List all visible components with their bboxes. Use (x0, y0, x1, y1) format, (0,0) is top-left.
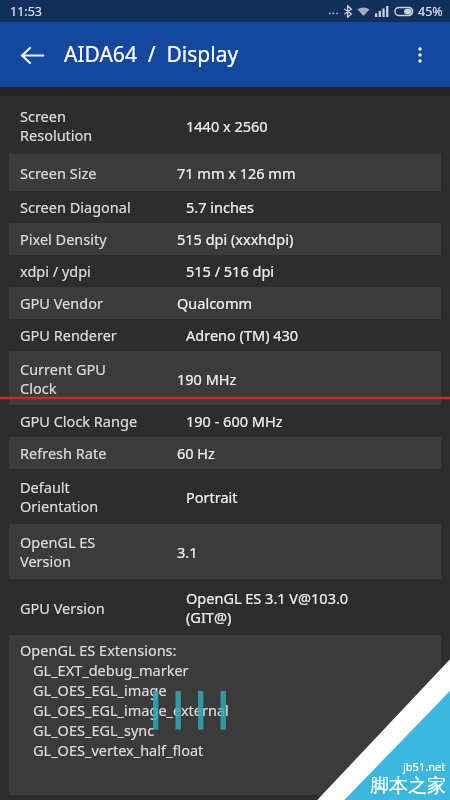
button[interactable]: OpenGL ES Extensions: (9, 635, 441, 795)
button[interactable]: Screen Resolution (0, 96, 450, 154)
button[interactable]: Refresh Rate (0, 437, 450, 469)
staticText: 515 dpi (xxxhdpi) (177, 229, 294, 249)
staticText: Portrait (186, 487, 238, 507)
button[interactable]: GPU Version (0, 579, 450, 635)
staticText: Pixel Density (20, 229, 177, 249)
staticText: Refresh Rate (20, 443, 177, 463)
button[interactable]: Default Orientation (0, 469, 450, 524)
button[interactable]: GPU Renderer (0, 319, 450, 351)
button[interactable]: OpenGL ES Version (0, 524, 450, 579)
staticText: GPU Clock Range (20, 411, 186, 431)
staticText: GL_EXT_debug_marker (33, 660, 189, 680)
staticText: 1440 x 2560 (186, 116, 268, 136)
button[interactable]: GPU Clock Range (0, 405, 450, 437)
staticText: 190 MHz (177, 369, 237, 389)
staticText: Screen Diagonal (20, 197, 186, 217)
staticText: GL_OES_vertex_half_float (33, 740, 204, 760)
staticText: GL_OES_EGL_sync (33, 720, 155, 740)
staticText: Qualcomm (177, 293, 253, 313)
staticText: Screen Resolution (20, 106, 186, 145)
staticText: 3.1 (177, 542, 198, 562)
staticText: GPU Vendor (20, 293, 177, 313)
staticText: Screen Size (20, 163, 177, 183)
button[interactable]: xdpi / ydpi (0, 255, 450, 287)
staticText: 190 - 600 MHz (186, 411, 283, 431)
staticText: GL_OES_EGL_image_external (33, 700, 229, 720)
staticText: 515 / 516 dpi (186, 261, 275, 281)
button[interactable]: Current GPU Clock (0, 351, 450, 405)
staticText: OpenGL ES Version (20, 532, 177, 571)
staticText: 71 mm x 126 mm (177, 163, 296, 183)
button[interactable]: Pixel Density (0, 223, 450, 255)
staticText: jb51.net (403, 759, 446, 774)
button[interactable]: Screen Diagonal (0, 191, 450, 223)
staticText: GL_OES_EGL_image (33, 680, 167, 700)
staticText: 60 Hz (177, 443, 215, 463)
staticText: Current GPU Clock (20, 359, 177, 398)
staticText: GPU Version (20, 598, 186, 618)
staticText: 5.7 inches (186, 197, 254, 217)
staticText: AIDA64 / Display (64, 40, 239, 69)
staticText: Default Orientation (20, 477, 186, 516)
staticText: OpenGL ES 3.1 V@103.0 (GIT@) (186, 588, 349, 627)
staticText: 11:53 (10, 3, 42, 20)
staticText: GPU Renderer (20, 325, 186, 345)
staticText: 45% (418, 3, 443, 20)
staticText: xdpi / ydpi (20, 261, 186, 281)
button[interactable]: Back (8, 31, 56, 79)
button[interactable]: Screen Size (0, 154, 450, 191)
staticText: OpenGL ES Extensions: (20, 640, 177, 660)
staticText: Adreno (TM) 430 (186, 325, 299, 345)
button[interactable]: GPU Vendor (0, 287, 450, 319)
staticText: 脚本之家 (370, 774, 446, 798)
button[interactable]: More options (396, 31, 444, 79)
